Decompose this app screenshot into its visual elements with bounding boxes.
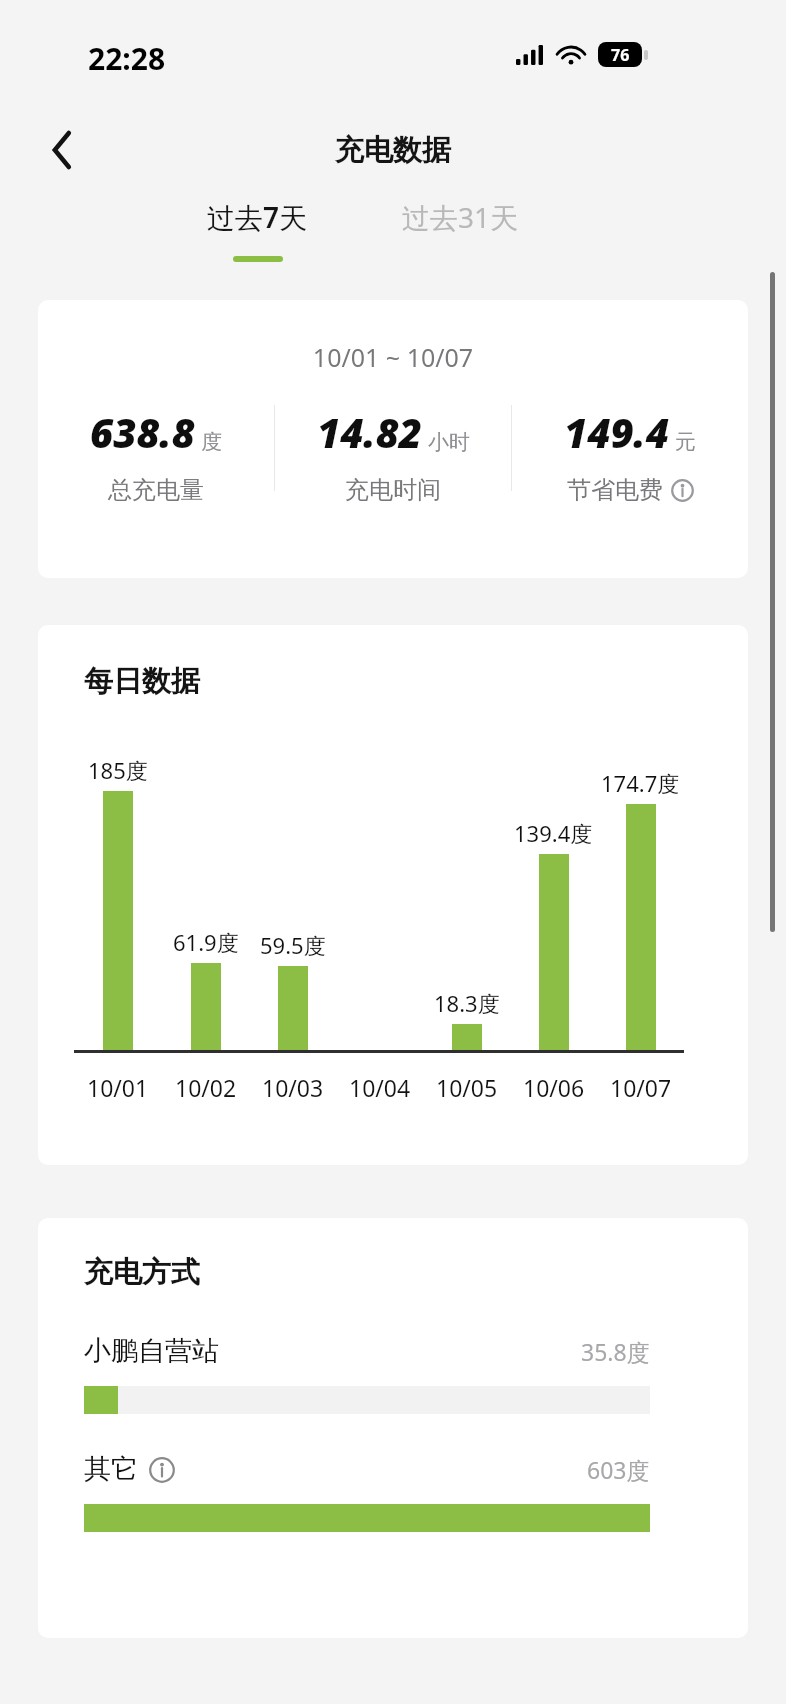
- button[interactable]: Back: [30, 118, 94, 182]
- staticText: 度: [201, 429, 222, 455]
- staticText: 14.82: [317, 405, 423, 459]
- staticText: 149.4: [564, 405, 670, 459]
- staticText: 每日数据: [84, 663, 200, 700]
- staticText: 35.8度: [581, 1336, 650, 1367]
- button[interactable]: 过去31天: [382, 198, 538, 248]
- staticText: 18.3度: [434, 988, 500, 1018]
- staticText: 小时: [428, 429, 470, 455]
- staticText: 10/05: [436, 1072, 498, 1103]
- button[interactable]: 过去7天: [186, 198, 328, 278]
- staticText: 10/07: [610, 1072, 672, 1103]
- staticText: 10/01 ~ 10/07: [38, 340, 748, 374]
- staticText: 过去7天: [207, 198, 308, 236]
- staticText: 10/02: [175, 1072, 237, 1103]
- staticText: 小鹏自营站: [84, 1334, 219, 1368]
- staticText: 节省电费: [567, 475, 663, 505]
- staticText: 638.8: [90, 405, 196, 459]
- staticText: 充电时间: [345, 475, 441, 505]
- staticText: 充电方式: [84, 1254, 200, 1291]
- staticText: 过去31天: [402, 198, 519, 236]
- staticText: 充电数据: [0, 132, 786, 169]
- staticText: 76: [611, 44, 630, 66]
- staticText: 10/06: [523, 1072, 585, 1103]
- button[interactable]: More info: [148, 1456, 175, 1483]
- staticText: 22:28: [88, 38, 166, 79]
- staticText: 185度: [88, 755, 148, 785]
- staticText: 603度: [587, 1454, 650, 1485]
- staticText: 总充电量: [108, 475, 204, 505]
- staticText: 139.4度: [514, 818, 593, 848]
- staticText: 59.5度: [260, 930, 326, 960]
- staticText: 174.7度: [601, 768, 680, 798]
- staticText: 10/03: [262, 1072, 324, 1103]
- staticText: 61.9度: [173, 927, 239, 957]
- staticText: 10/04: [349, 1072, 411, 1103]
- staticText: 其它: [84, 1452, 138, 1486]
- staticText: 10/01: [87, 1072, 149, 1103]
- staticText: 元: [675, 429, 696, 455]
